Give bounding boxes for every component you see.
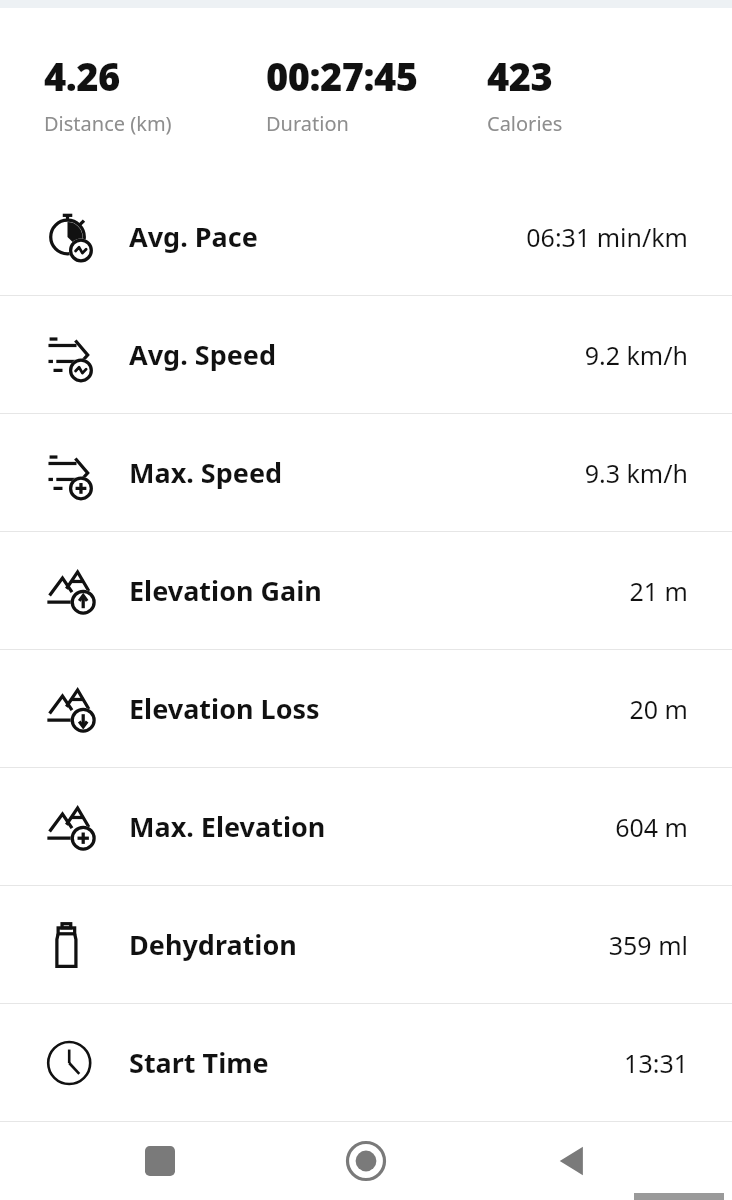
staticText: 20 m xyxy=(629,692,688,726)
staticText: Avg. Pace xyxy=(129,218,258,255)
staticText: Dehydration xyxy=(129,926,297,963)
staticText: 9.2 km/h xyxy=(584,338,688,372)
staticText: 423 xyxy=(487,50,553,102)
staticText: 604 m xyxy=(615,810,688,844)
staticText: 00:27:45 xyxy=(266,50,418,102)
staticText: 359 ml xyxy=(608,928,688,962)
button[interactable]: Back xyxy=(526,1122,618,1200)
button[interactable]: Dehydration xyxy=(0,886,732,1003)
staticText: Elevation Loss xyxy=(129,690,320,727)
staticText: 21 m xyxy=(629,574,688,608)
button[interactable]: Avg. Pace xyxy=(0,178,732,295)
staticText: Avg. Speed xyxy=(129,336,277,373)
staticText: Duration xyxy=(266,110,349,137)
staticText: Calories xyxy=(487,110,563,137)
staticText: 9.3 km/h xyxy=(584,456,688,490)
staticText: Max. Elevation xyxy=(129,808,326,845)
staticText: Distance (km) xyxy=(44,110,172,137)
button[interactable]: Max. Speed xyxy=(0,414,732,531)
staticText: Max. Speed xyxy=(129,454,283,491)
staticText: 4.26 xyxy=(44,50,120,102)
button[interactable]: Recent apps xyxy=(114,1122,206,1200)
staticText: 13:31 xyxy=(624,1046,688,1080)
button[interactable]: Elevation Loss xyxy=(0,650,732,767)
staticText: Start Time xyxy=(129,1044,269,1081)
button[interactable]: Avg. Speed xyxy=(0,296,732,413)
staticText: 06:31 min/km xyxy=(526,220,688,254)
button[interactable]: Home xyxy=(320,1122,412,1200)
button[interactable]: Max. Elevation xyxy=(0,768,732,885)
button[interactable]: Start Time xyxy=(0,1004,732,1121)
button[interactable]: Elevation Gain xyxy=(0,532,732,649)
staticText: Elevation Gain xyxy=(129,572,322,609)
